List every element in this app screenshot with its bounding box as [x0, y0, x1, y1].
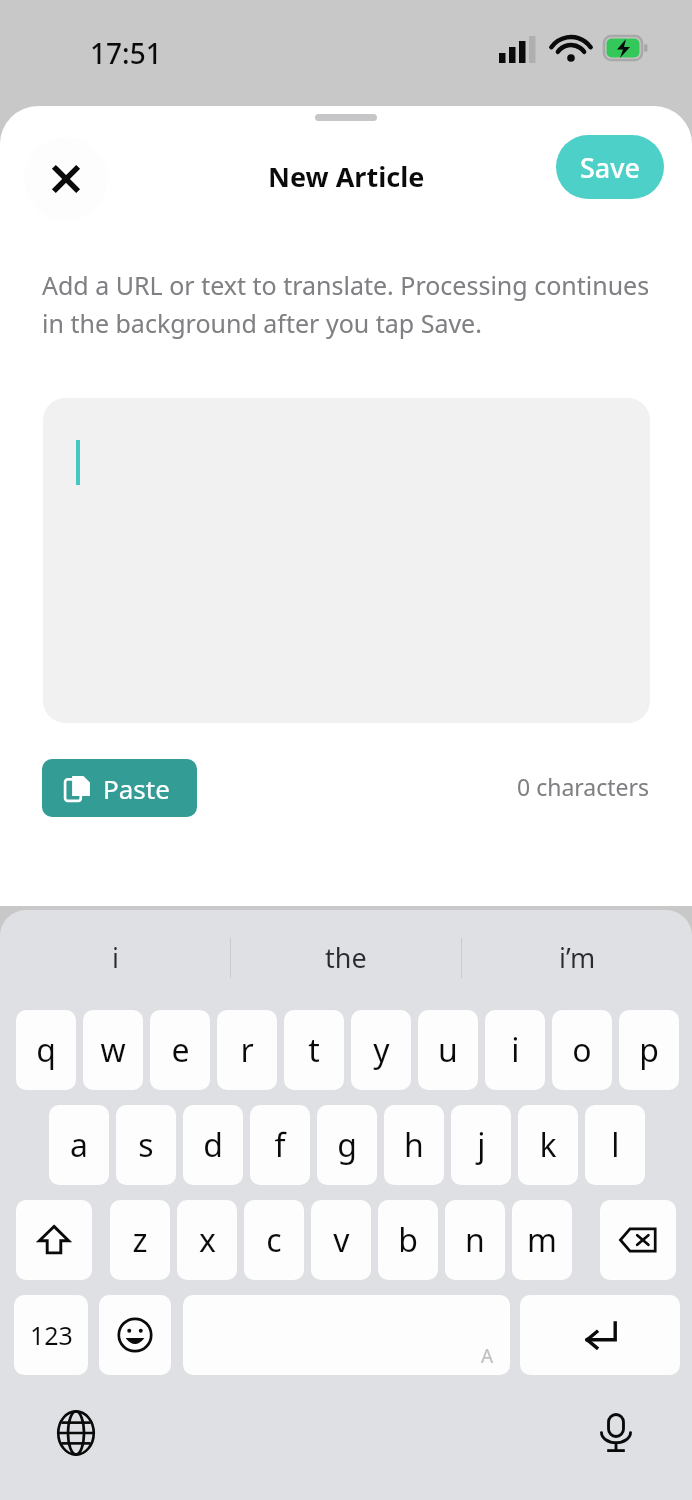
button[interactable]: b: [378, 1200, 438, 1280]
button[interactable]: n: [445, 1200, 505, 1280]
button[interactable]: l: [585, 1105, 645, 1185]
button[interactable]: j: [451, 1105, 511, 1185]
button[interactable]: i: [0, 910, 230, 1005]
staticText: j: [477, 1123, 486, 1167]
staticText: h: [404, 1123, 424, 1167]
button[interactable]: f: [250, 1105, 310, 1185]
button[interactable]: h: [384, 1105, 444, 1185]
button[interactable]: d: [183, 1105, 243, 1185]
button[interactable]: g: [317, 1105, 377, 1185]
button[interactable]: i’m: [462, 910, 692, 1005]
staticText: 0 characters: [517, 771, 650, 802]
button[interactable]: y: [351, 1010, 411, 1090]
staticText: f: [274, 1123, 286, 1167]
button[interactable]: Backspace: [600, 1200, 676, 1280]
staticText: z: [132, 1218, 148, 1262]
staticText: n: [465, 1218, 485, 1262]
staticText: b: [398, 1218, 418, 1262]
button[interactable]: Emoji: [99, 1295, 171, 1375]
button[interactable]: q: [16, 1010, 76, 1090]
staticText: i’m: [559, 939, 596, 976]
button[interactable]: u: [418, 1010, 478, 1090]
staticText: m: [527, 1218, 557, 1262]
staticText: c: [266, 1218, 282, 1262]
staticText: Save: [580, 149, 641, 186]
staticText: u: [438, 1028, 458, 1072]
staticText: t: [308, 1028, 320, 1072]
button[interactable]: o: [552, 1010, 612, 1090]
staticText: v: [333, 1218, 350, 1262]
button[interactable]: z: [110, 1200, 170, 1280]
button[interactable]: a: [49, 1105, 109, 1185]
staticText: w: [100, 1028, 126, 1072]
button[interactable]: r: [217, 1010, 277, 1090]
button[interactable]: Paste: [42, 759, 197, 817]
button[interactable]: Dictation: [588, 1405, 644, 1461]
staticText: g: [337, 1123, 357, 1167]
button[interactable]: x: [177, 1200, 237, 1280]
staticText: New Article: [268, 158, 425, 195]
button[interactable]: Change keyboard: [48, 1405, 104, 1461]
button[interactable]: i: [485, 1010, 545, 1090]
staticText: s: [138, 1123, 154, 1167]
button[interactable]: s: [116, 1105, 176, 1185]
button[interactable]: Space: [183, 1295, 510, 1375]
staticText: Paste: [103, 771, 170, 806]
staticText: l: [611, 1123, 620, 1167]
staticText: x: [199, 1218, 216, 1262]
button[interactable]: c: [244, 1200, 304, 1280]
staticText: d: [203, 1123, 223, 1167]
staticText: i: [112, 939, 119, 976]
button[interactable]: Return: [520, 1295, 680, 1375]
button[interactable]: k: [518, 1105, 578, 1185]
button[interactable]: 123: [14, 1295, 88, 1375]
button[interactable]: [43, 398, 650, 723]
button[interactable]: v: [311, 1200, 371, 1280]
staticText: a: [70, 1123, 88, 1167]
button[interactable]: w: [83, 1010, 143, 1090]
staticText: k: [539, 1123, 557, 1167]
staticText: e: [171, 1028, 190, 1072]
staticText: i: [511, 1028, 520, 1072]
staticText: 123: [30, 1318, 73, 1352]
staticText: y: [373, 1028, 390, 1072]
staticText: r: [240, 1028, 254, 1072]
staticText: the: [325, 939, 367, 976]
staticText: q: [36, 1028, 56, 1072]
staticText: p: [639, 1028, 659, 1072]
button[interactable]: Save: [556, 135, 664, 199]
staticText: A: [481, 1343, 494, 1369]
staticText: Add a URL or text to translate. Processi…: [42, 268, 650, 340]
button[interactable]: m: [512, 1200, 572, 1280]
button[interactable]: Shift: [16, 1200, 92, 1280]
button[interactable]: e: [150, 1010, 210, 1090]
staticText: o: [572, 1028, 592, 1072]
button[interactable]: Close: [24, 137, 108, 221]
button[interactable]: t: [284, 1010, 344, 1090]
staticText: 17:51: [90, 34, 162, 72]
button[interactable]: the: [231, 910, 461, 1005]
button[interactable]: p: [619, 1010, 679, 1090]
